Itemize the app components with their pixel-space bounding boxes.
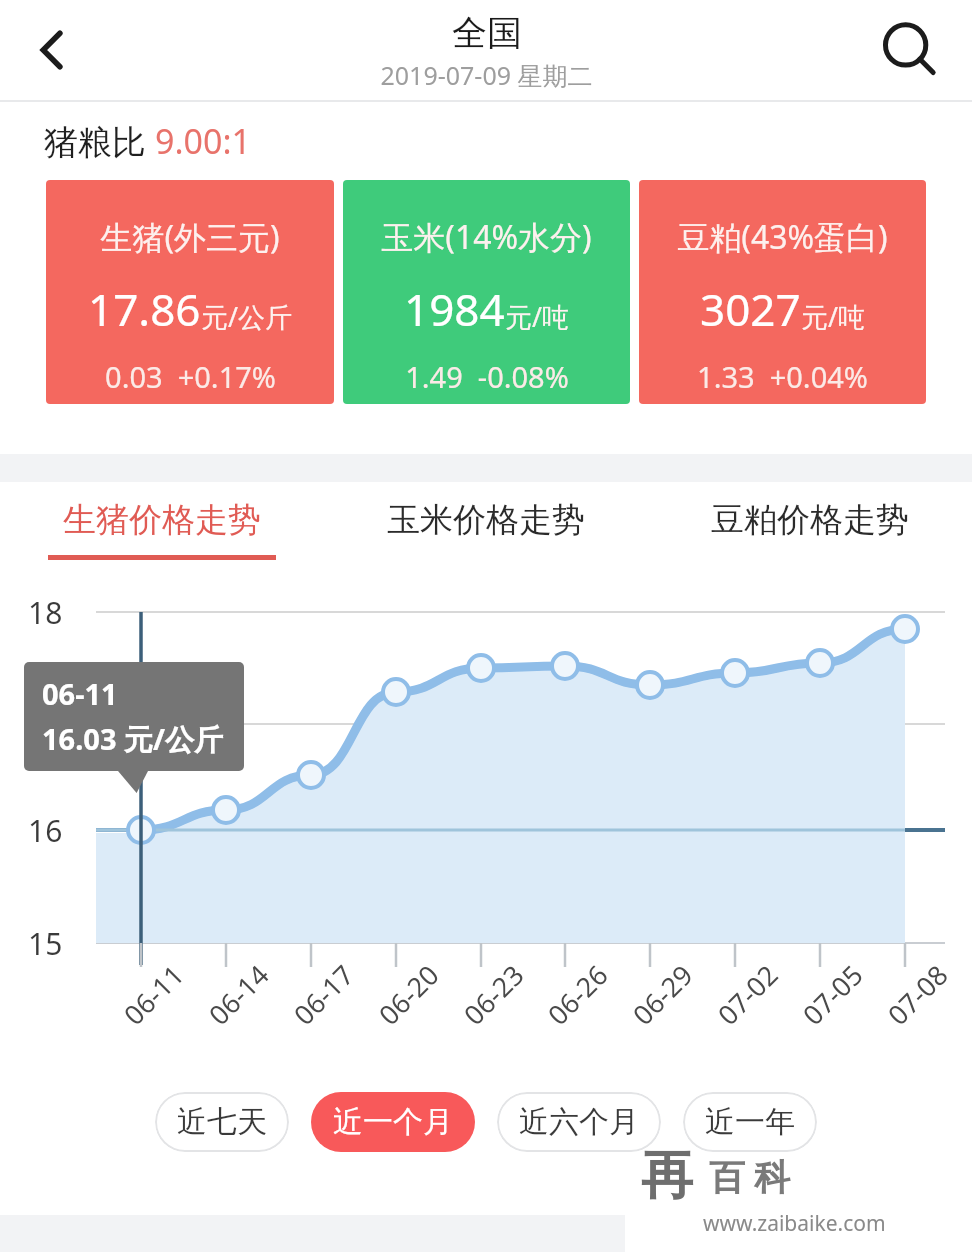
button[interactable]: 近七天 bbox=[155, 1092, 289, 1152]
staticText: 06-14 bbox=[200, 956, 277, 1033]
button[interactable]: 近六个月 bbox=[497, 1092, 661, 1152]
button[interactable]: 玉米(14%水分) bbox=[343, 180, 630, 404]
button[interactable]: 近一个月 bbox=[311, 1092, 475, 1152]
staticText: 06-17 bbox=[285, 956, 362, 1033]
button[interactable]: 生猪价格走势 bbox=[0, 482, 324, 560]
staticText: 0.03 +0.17% bbox=[105, 357, 276, 396]
staticText: 2019-07-09 星期二 bbox=[380, 58, 593, 92]
staticText: 1.49 -0.08% bbox=[405, 357, 569, 396]
staticText: 06-11 bbox=[42, 674, 118, 713]
staticText: 近一年 bbox=[705, 1103, 795, 1141]
staticText: 16 bbox=[28, 810, 63, 851]
staticText: 全国 bbox=[452, 11, 522, 55]
button[interactable]: 豆粕(43%蛋白) bbox=[639, 180, 926, 404]
staticText: 百 科 bbox=[709, 1152, 791, 1201]
staticText: 3027 bbox=[700, 279, 801, 339]
staticText: 再 bbox=[641, 1143, 693, 1209]
staticText: 06-23 bbox=[455, 956, 532, 1033]
staticText: 生猪(外三元) bbox=[100, 215, 280, 259]
staticText: 07-05 bbox=[794, 956, 871, 1033]
staticText: 07-02 bbox=[709, 956, 786, 1033]
button[interactable]: 豆粕价格走势 bbox=[648, 482, 972, 560]
staticText: 1984 bbox=[404, 279, 505, 339]
staticText: www.zaibaike.com bbox=[703, 1209, 886, 1238]
staticText: 近六个月 bbox=[519, 1103, 639, 1141]
button[interactable]: 近一年 bbox=[683, 1092, 817, 1152]
staticText: 元/吨 bbox=[801, 298, 866, 335]
staticText: 06-11 bbox=[115, 956, 192, 1033]
staticText: 07-08 bbox=[879, 956, 956, 1033]
staticText: 猪粮比 bbox=[44, 118, 155, 164]
staticText: 近七天 bbox=[177, 1103, 267, 1141]
staticText: 1.33 +0.04% bbox=[697, 357, 868, 396]
button[interactable]: Search bbox=[870, 11, 948, 89]
staticText: 元/公斤 bbox=[201, 298, 293, 335]
staticText: 17.86 bbox=[88, 279, 201, 339]
staticText: 06-20 bbox=[370, 956, 447, 1033]
staticText: 06-26 bbox=[539, 956, 616, 1033]
staticText: 玉米(14%水分) bbox=[381, 215, 592, 259]
staticText: 元/吨 bbox=[505, 298, 570, 335]
button[interactable]: 玉米价格走势 bbox=[324, 482, 648, 560]
staticText: 豆粕(43%蛋白) bbox=[677, 215, 888, 259]
staticText: 15 bbox=[28, 923, 63, 964]
staticText: 9.00:1 bbox=[155, 118, 252, 164]
staticText: 18 bbox=[28, 592, 63, 633]
staticText: 06-29 bbox=[624, 956, 701, 1033]
staticText: 玉米价格走势 bbox=[387, 499, 585, 541]
staticText: 16.03 元/公斤 bbox=[42, 719, 224, 759]
button[interactable]: 生猪(外三元) bbox=[46, 180, 334, 404]
staticText: 生猪价格走势 bbox=[63, 499, 261, 541]
staticText: 17 bbox=[28, 704, 63, 745]
staticText: 近一个月 bbox=[333, 1103, 453, 1141]
button[interactable]: Back bbox=[14, 12, 90, 88]
staticText: 豆粕价格走势 bbox=[711, 499, 909, 541]
